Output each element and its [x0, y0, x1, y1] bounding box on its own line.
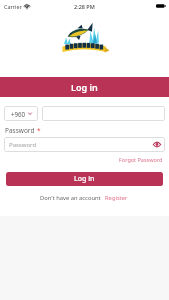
- staticText: Password: [9, 141, 37, 149]
- staticText: Carrier: [4, 3, 22, 10]
- staticText: Log in: [74, 174, 95, 184]
- staticText: Password: [5, 126, 37, 135]
- staticText: Forgot Password: [119, 156, 163, 163]
- staticText: 2:28 PM: [74, 3, 95, 10]
- button[interactable]: [42, 106, 165, 121]
- button[interactable]: Register: [104, 192, 129, 204]
- button[interactable]: Password: [4, 137, 165, 152]
- button[interactable]: Show password: [152, 140, 161, 149]
- staticText: Register: [105, 194, 128, 202]
- staticText: Log in: [71, 81, 98, 93]
- staticText: *: [37, 126, 41, 135]
- button[interactable]: Log in: [6, 172, 163, 186]
- staticText: Don't have an account: [40, 194, 101, 202]
- button[interactable]: Forgot Password: [118, 154, 164, 165]
- staticText: +960: [11, 110, 26, 118]
- button[interactable]: +960: [4, 106, 38, 121]
